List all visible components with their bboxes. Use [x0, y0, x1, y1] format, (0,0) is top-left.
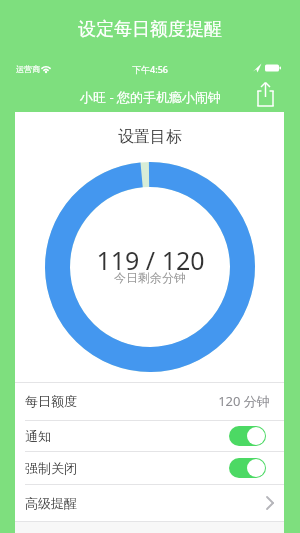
staticText: 120 分钟	[218, 392, 270, 410]
button[interactable]	[229, 458, 266, 478]
staticText: 119 / 120	[96, 243, 205, 277]
staticText: 设定每日额度提醒	[78, 18, 222, 41]
staticText: 设置目标	[118, 127, 182, 147]
button[interactable]: 每日额度	[15, 382, 284, 420]
staticText: 今日剩余分钟	[114, 270, 186, 285]
staticText: 强制关闭	[25, 460, 77, 476]
staticText: 高级提醒	[25, 495, 77, 511]
staticText: 运营商	[16, 64, 40, 74]
button[interactable]	[229, 426, 266, 446]
staticText: 每日额度	[25, 393, 77, 409]
staticText: 小旺 - 您的手机瘾小闹钟	[80, 88, 221, 106]
staticText: 通知	[25, 428, 51, 444]
button[interactable]: 高级提醒	[15, 484, 284, 522]
staticText: 下午4:56	[132, 63, 168, 75]
button[interactable]	[252, 80, 280, 112]
